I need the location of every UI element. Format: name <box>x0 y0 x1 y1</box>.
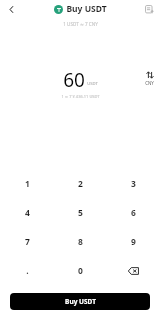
button[interactable]: 2 <box>54 169 107 198</box>
staticText: 5 <box>78 207 83 219</box>
button[interactable]: . <box>0 256 54 285</box>
button[interactable]: 1 <box>0 169 54 198</box>
staticText: 1 ≈ 7 ¥ 436.11 USDT <box>61 94 100 99</box>
staticText: 8 <box>78 236 83 248</box>
staticText: 6 <box>131 207 136 219</box>
staticText: 0 <box>78 265 83 277</box>
staticText: 2 <box>78 178 83 190</box>
staticText: Buy USDT <box>66 3 107 15</box>
staticText: . <box>26 265 29 277</box>
staticText: 1 <box>25 178 30 190</box>
button[interactable]: 7 <box>0 227 54 256</box>
staticText: 3 <box>131 178 136 190</box>
button[interactable]: 6 <box>107 198 160 227</box>
button[interactable]: 5 <box>54 198 107 227</box>
button[interactable]: 8 <box>54 227 107 256</box>
staticText: 7 <box>25 236 30 248</box>
staticText: 1 USDT ≈ 7 CNY <box>63 21 98 27</box>
button[interactable]: Switch currency to CNY <box>145 71 154 86</box>
button[interactable]: Order history <box>142 2 156 16</box>
staticText: Buy USDT <box>65 297 96 306</box>
button[interactable]: 9 <box>107 227 160 256</box>
button[interactable]: 4 <box>0 198 54 227</box>
staticText: 9 <box>131 236 136 248</box>
staticText: 60 <box>63 67 85 89</box>
button[interactable]: 0 <box>54 256 107 285</box>
button[interactable]: 3 <box>107 169 160 198</box>
staticText: 4 <box>25 207 30 219</box>
button[interactable]: Buy USDT <box>10 293 150 310</box>
button[interactable]: Backspace <box>107 256 160 285</box>
staticText: USDT <box>87 81 98 87</box>
staticText: CNY <box>145 80 154 86</box>
button[interactable]: Back <box>3 1 19 17</box>
